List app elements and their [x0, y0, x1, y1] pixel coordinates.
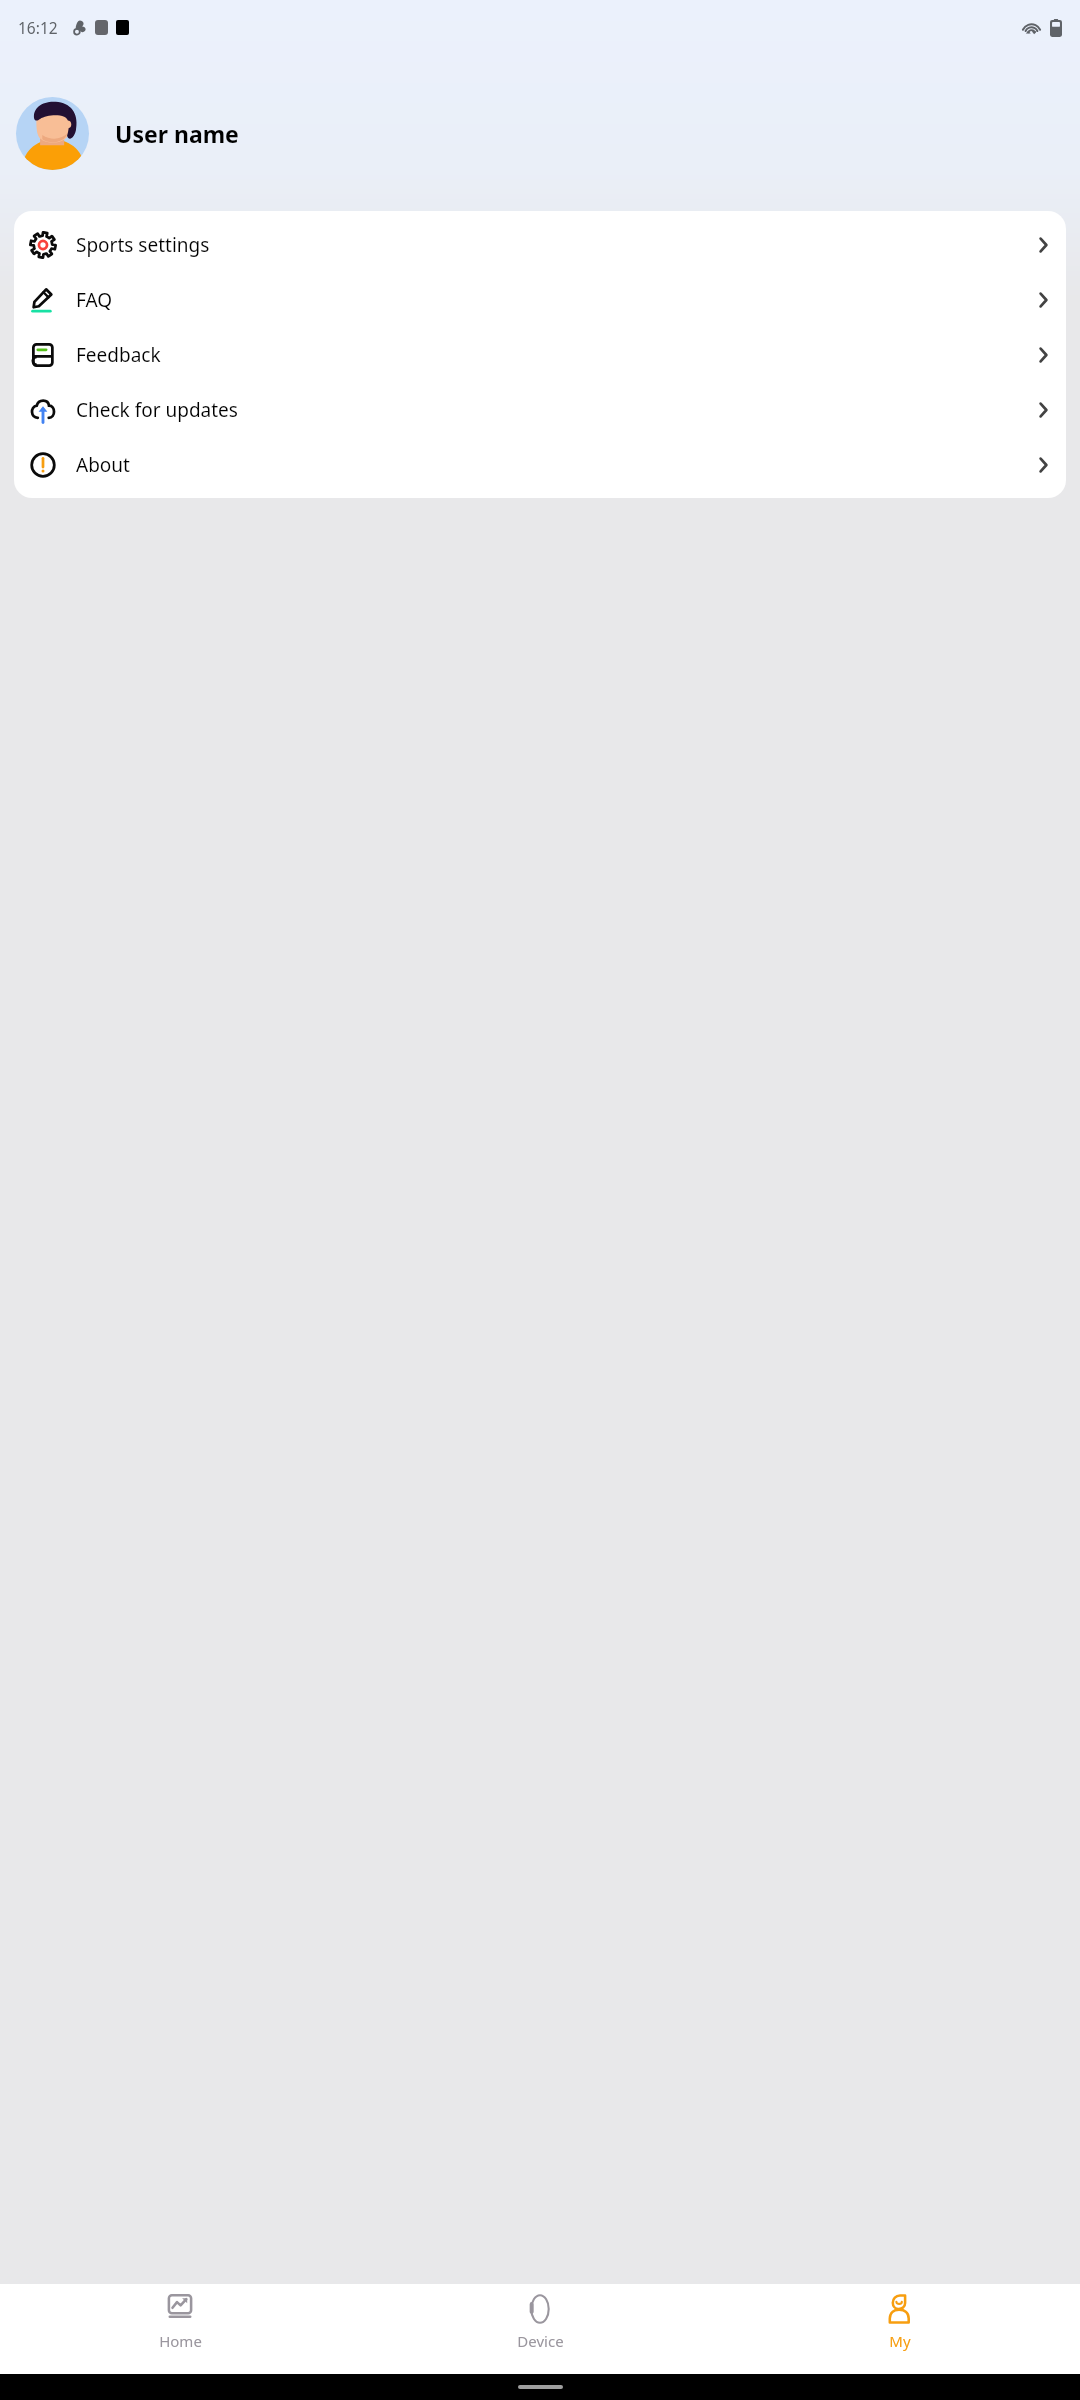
- staticText: 16:12: [18, 17, 58, 38]
- staticText: Sports settings: [76, 232, 210, 258]
- button[interactable]: Sports settings: [14, 217, 1066, 272]
- button[interactable]: Home: [0, 2284, 360, 2374]
- button[interactable]: Check for updates: [14, 382, 1066, 437]
- staticText: Check for updates: [76, 397, 238, 423]
- staticText: FAQ: [76, 287, 113, 313]
- staticText: User name: [115, 118, 239, 149]
- button[interactable]: About: [14, 437, 1066, 492]
- button[interactable]: FAQ: [14, 272, 1066, 327]
- button[interactable]: My: [720, 2284, 1080, 2374]
- staticText: My: [889, 2331, 911, 2351]
- button[interactable]: Feedback: [14, 327, 1066, 382]
- staticText: About: [76, 452, 130, 478]
- button[interactable]: Device: [360, 2284, 720, 2374]
- staticText: Home: [159, 2331, 202, 2351]
- staticText: Feedback: [76, 342, 161, 368]
- staticText: Device: [517, 2331, 564, 2351]
- button[interactable]: User name: [0, 79, 1080, 187]
